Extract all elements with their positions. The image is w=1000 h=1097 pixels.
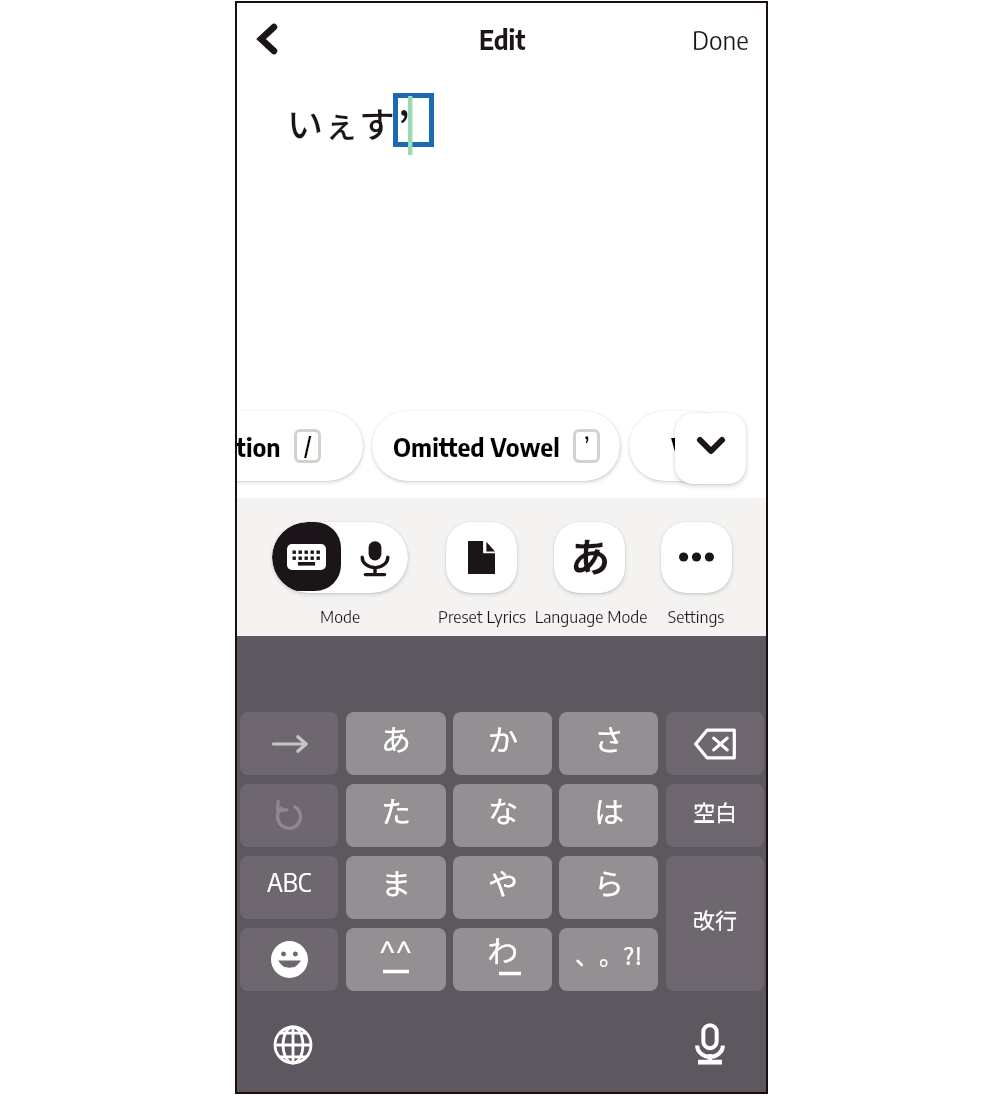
staticText: cation — [237, 431, 281, 462]
staticText: 空白 — [693, 795, 738, 827]
staticText: / — [304, 430, 312, 460]
button[interactable]: Back — [238, 10, 296, 68]
staticText: 改行 — [693, 903, 738, 935]
button[interactable]: な — [453, 784, 552, 847]
staticText: Omitted Vowel — [393, 431, 560, 462]
staticText: ^^ — [379, 933, 413, 970]
staticText: あ — [570, 526, 610, 584]
button[interactable] — [240, 712, 338, 775]
staticText: ’ — [584, 430, 590, 460]
button[interactable]: た — [346, 784, 446, 847]
staticText: Mode — [240, 605, 440, 626]
button[interactable]: か — [453, 712, 552, 775]
button[interactable]: わ — [453, 928, 552, 991]
staticText: ま — [381, 860, 411, 903]
button[interactable]: Done — [676, 13, 766, 65]
staticText: や — [488, 860, 518, 903]
button[interactable]: V — [629, 411, 729, 481]
button[interactable]: さ — [559, 712, 658, 775]
staticText: Done — [692, 23, 749, 55]
staticText: Language Mode — [491, 605, 691, 626]
staticText: Settings — [596, 605, 766, 626]
button[interactable]: Expand suggestions — [675, 413, 746, 484]
button[interactable]: ^^ — [346, 928, 446, 991]
staticText: ABC — [267, 866, 312, 897]
button[interactable]: は — [559, 784, 658, 847]
staticText: か — [488, 716, 518, 759]
staticText: ら — [594, 860, 624, 903]
button[interactable]: Settings — [661, 522, 732, 593]
button[interactable]: 、。?! — [559, 928, 658, 991]
button[interactable]: Mode — [272, 522, 408, 593]
button[interactable]: Omitted Vowel — [372, 411, 620, 481]
button[interactable] — [240, 784, 338, 847]
staticText: Preset Lyrics — [382, 605, 582, 626]
button[interactable]: あ — [346, 712, 446, 775]
staticText: 、。?! — [575, 937, 643, 972]
button[interactable]: cation — [237, 411, 363, 481]
staticText: いぇす — [287, 96, 396, 148]
staticText: わ — [487, 928, 518, 972]
staticText: ’ — [398, 97, 410, 149]
button[interactable]: 空白 — [666, 784, 764, 847]
staticText: た — [381, 788, 411, 831]
button[interactable]: 改行 — [666, 856, 764, 991]
button[interactable]: Switch language — [263, 1015, 323, 1075]
staticText: な — [488, 788, 518, 831]
button[interactable]: ま — [346, 856, 446, 919]
staticText: V — [671, 431, 688, 462]
button[interactable]: Language Mode — [554, 522, 625, 593]
button[interactable]: ABC — [240, 856, 338, 919]
button[interactable]: Voice input — [680, 1014, 740, 1074]
button[interactable]: Preset Lyrics — [446, 522, 517, 593]
button[interactable]: ら — [559, 856, 658, 919]
button[interactable] — [240, 928, 338, 991]
button[interactable]: や — [453, 856, 552, 919]
staticText: あ — [381, 716, 411, 759]
button[interactable] — [666, 712, 764, 775]
staticText: は — [594, 788, 624, 831]
staticText: Edit — [479, 23, 526, 55]
staticText: さ — [594, 716, 624, 759]
